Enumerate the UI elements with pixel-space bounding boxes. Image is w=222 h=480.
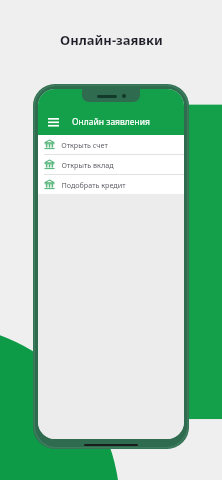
staticText: Подобрать кредит (61, 180, 126, 190)
staticText: Открыть счет (61, 140, 108, 150)
staticText: Онлайн заявления (72, 116, 150, 128)
staticText: Открыть вклад (61, 160, 114, 170)
button[interactable]: Открыть счет (38, 135, 184, 154)
staticText: Онлайн-заявки (60, 31, 163, 49)
button[interactable]: Подобрать кредит (38, 175, 184, 194)
button[interactable]: Открыть вклад (38, 155, 184, 174)
button[interactable]: Меню (43, 112, 63, 132)
